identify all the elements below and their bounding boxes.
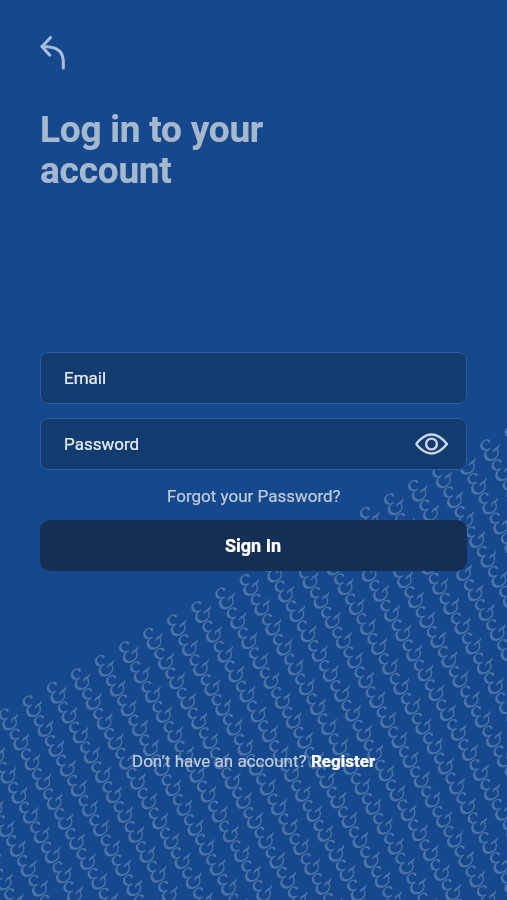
button[interactable] <box>413 426 449 462</box>
staticText: Sign In <box>225 535 282 556</box>
button[interactable]: Password <box>40 418 467 470</box>
staticText: Register <box>311 751 376 771</box>
staticText: Log in to your account <box>40 108 264 192</box>
staticText: Email <box>64 368 107 388</box>
button[interactable] <box>40 26 84 70</box>
button[interactable]: Forgot your Password? <box>167 486 341 506</box>
staticText: Password <box>64 434 140 454</box>
button[interactable]: Sign In <box>40 520 467 571</box>
button[interactable]: Email <box>40 352 467 404</box>
staticText: Don’t have an account? <box>132 751 311 771</box>
button[interactable]: Don’t have an account? <box>40 751 467 771</box>
